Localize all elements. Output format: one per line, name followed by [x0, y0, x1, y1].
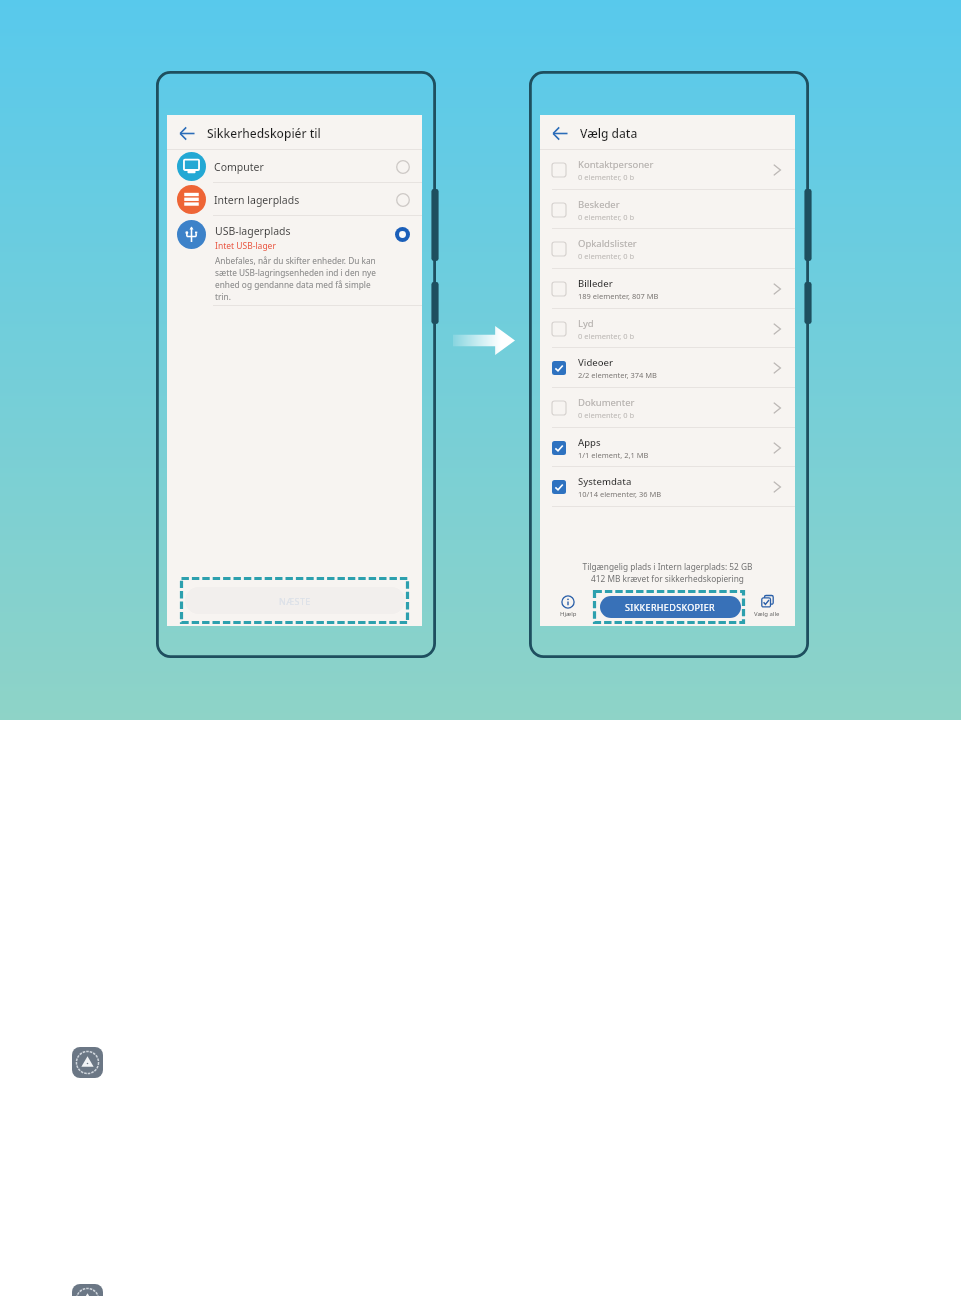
button[interactable]: Opkaldslister [540, 229, 795, 269]
button[interactable]: Kontaktpersoner [540, 150, 795, 190]
staticText: Tilgængelig plads i Intern lagerplads: 5… [540, 561, 795, 572]
staticText: Systemdata [578, 475, 632, 488]
staticText: 0 elementer, 0 b [578, 172, 635, 182]
button[interactable]: SIKKERHEDSKOPIER [600, 596, 741, 618]
button[interactable]: Vælg alle [750, 594, 784, 618]
staticText: Intern lagerplads [214, 193, 300, 207]
button[interactable]: Beskeder [540, 190, 795, 229]
button[interactable]: Systemdata [540, 467, 795, 507]
staticText: Opkaldslister [578, 237, 637, 250]
staticText: Billeder [578, 277, 613, 290]
staticText: Hjælp [560, 610, 577, 618]
staticText: SIKKERHEDSKOPIER [625, 601, 716, 613]
staticText: Videoer [578, 356, 614, 369]
staticText: 0 elementer, 0 b [578, 212, 635, 222]
staticText: 2/2 elementer, 374 MB [578, 370, 657, 380]
button[interactable]: USB-lagerplads [167, 216, 422, 306]
staticText: 189 elementer, 807 MB [578, 291, 659, 301]
staticText: NÆSTE [279, 595, 311, 607]
button[interactable]: Lyd [540, 309, 795, 348]
staticText: 0 elementer, 0 b [578, 410, 635, 420]
staticText: 10/14 elementer, 36 MB [578, 489, 662, 499]
staticText: Intet USB-lager [215, 240, 276, 252]
staticText: Sikkerhedskopiér til [207, 125, 321, 141]
button[interactable]: Computer [167, 150, 422, 183]
button[interactable]: Intern lagerplads [167, 183, 422, 216]
staticText: Beskeder [578, 198, 620, 211]
staticText: Vælg data [580, 125, 638, 141]
staticText: 0 elementer, 0 b [578, 331, 635, 341]
staticText: Computer [214, 160, 264, 174]
button[interactable]: Back [543, 116, 576, 149]
staticText: Kontaktpersoner [578, 158, 654, 171]
button[interactable]: Apps [540, 428, 795, 467]
staticText: Apps [578, 436, 601, 449]
staticText: 1/1 element, 2,1 MB [578, 450, 649, 460]
button[interactable]: Billeder [540, 269, 795, 309]
staticText: Dokumenter [578, 396, 635, 409]
staticText: 0 elementer, 0 b [578, 251, 635, 261]
button[interactable]: Back [170, 116, 203, 149]
staticText: USB-lagerplads [215, 224, 291, 238]
button[interactable]: Videoer [540, 348, 795, 388]
staticText: Anbefales, når du skifter enheder. Du ka… [215, 255, 385, 302]
button[interactable]: Hjælp [551, 595, 585, 618]
staticText: Lyd [578, 317, 594, 330]
staticText: 412 MB krævet for sikkerhedskopiering [540, 573, 795, 584]
button[interactable]: Dokumenter [540, 388, 795, 428]
staticText: Vælg alle [754, 610, 780, 618]
